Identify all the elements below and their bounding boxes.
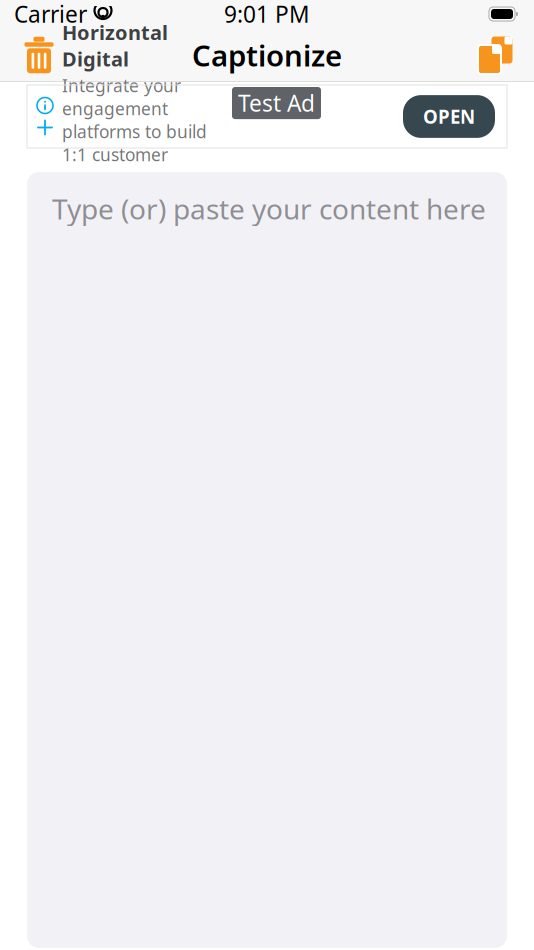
staticText: OPEN	[423, 104, 475, 129]
staticText: Type (or) paste your content here	[52, 190, 486, 227]
button[interactable]: Ad information	[36, 96, 54, 114]
button[interactable]: Clear text	[12, 31, 66, 79]
button[interactable]: OPEN	[403, 95, 495, 138]
button[interactable]: Close ad	[36, 118, 54, 136]
staticText: 9:01 PM	[224, 0, 310, 29]
button[interactable]: Copy	[468, 31, 522, 79]
staticText: Integrate your engagement platforms to b…	[62, 74, 207, 166]
staticText: Captionize	[192, 35, 342, 74]
staticText: Carrier	[14, 0, 87, 29]
staticText: Horizontal Digital	[62, 19, 168, 72]
staticText: experiences	[62, 168, 128, 214]
staticText: Horizontal Digital	[132, 168, 211, 214]
staticText: Test Ad	[238, 88, 315, 118]
button[interactable]: Type (or) paste your content here	[27, 172, 507, 948]
